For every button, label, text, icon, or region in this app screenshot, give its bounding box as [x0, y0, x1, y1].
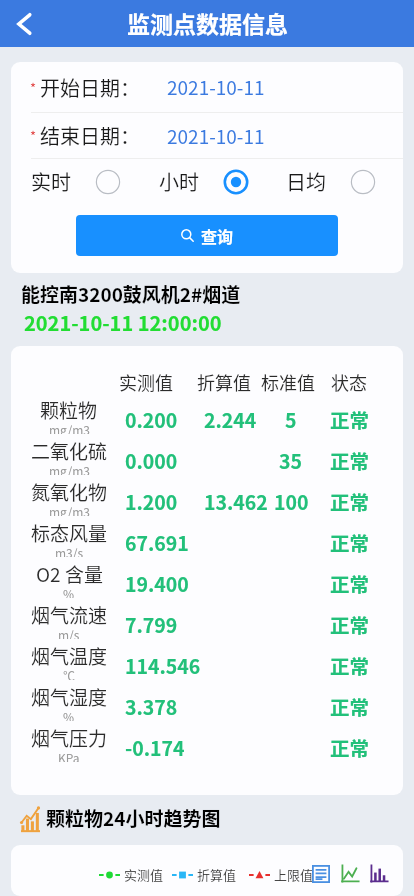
staticText: 正常 [330, 610, 370, 638]
staticText: 烟气压力 [31, 724, 108, 752]
staticText: 正常 [330, 487, 370, 515]
staticText: 正常 [330, 651, 370, 679]
staticText: 13.462 [204, 487, 268, 515]
staticText: 氮氧化物 [31, 478, 108, 506]
staticText: * [30, 126, 37, 145]
staticText: -0.174 [125, 733, 185, 761]
staticText: KPa [58, 749, 80, 762]
button[interactable]: 日均 [276, 167, 403, 196]
button[interactable]: Back [0, 2, 47, 46]
staticText: 折算值 [197, 865, 237, 884]
staticText: % [63, 708, 75, 721]
staticText: * [30, 78, 37, 97]
staticText: 正常 [330, 528, 370, 556]
staticText: 19.400 [125, 569, 189, 597]
staticText: mg/m3 [49, 421, 90, 434]
staticText: 114.546 [125, 651, 201, 679]
staticText: 67.691 [125, 528, 189, 556]
button[interactable]: 实时 [21, 167, 149, 196]
staticText: 烟气温度 [31, 642, 108, 670]
staticText: 二氧化硫 [31, 437, 108, 465]
staticText: 颗粒物 [40, 396, 98, 424]
staticText: 查询 [201, 224, 234, 247]
staticText: 正常 [330, 733, 370, 761]
staticText: 1.200 [125, 487, 178, 515]
staticText: 2021-10-11 12:00:00 [24, 308, 222, 337]
staticText: 实测值 [124, 865, 164, 884]
staticText: 能控南3200鼓风机2#烟道 [21, 280, 241, 308]
button[interactable]: Bar chart [369, 864, 389, 884]
staticText: 0.000 [125, 446, 178, 474]
staticText: 3.378 [125, 692, 178, 720]
staticText: 结束日期： [40, 121, 140, 150]
button[interactable]: Table view [311, 864, 331, 884]
button[interactable]: 查询 [76, 215, 338, 256]
staticText: 监测点数据信息 [127, 6, 288, 39]
staticText: 标态风量 [31, 519, 108, 547]
staticText: mg/m3 [49, 503, 90, 516]
staticText: 状态 [331, 369, 367, 395]
staticText: 实测值 [119, 369, 173, 395]
staticText: 正常 [330, 569, 370, 597]
staticText: mg/m3 [49, 462, 90, 475]
staticText: 7.799 [125, 610, 178, 638]
button[interactable]: * [11, 62, 403, 112]
staticText: % [63, 585, 75, 598]
staticText: 颗粒物24小时趋势图 [46, 804, 221, 832]
staticText: O2 含量 [36, 560, 103, 588]
staticText: 正常 [330, 692, 370, 720]
staticText: 小时 [159, 167, 199, 196]
button[interactable]: Line chart [340, 864, 360, 884]
staticText: m/s [58, 626, 80, 639]
staticText: 0.200 [125, 405, 178, 433]
staticText: 2021-10-11 [167, 73, 265, 101]
staticText: 上限值 [274, 865, 314, 884]
staticText: ℃ [63, 667, 76, 680]
staticText: m3/s [55, 544, 84, 557]
staticText: 烟气流速 [31, 601, 108, 629]
staticText: 正常 [330, 405, 370, 433]
staticText: 折算值 [197, 369, 251, 395]
button[interactable]: 小时 [149, 167, 276, 196]
staticText: 正常 [330, 446, 370, 474]
button[interactable]: * [11, 113, 403, 158]
staticText: 烟气湿度 [31, 683, 108, 711]
staticText: 实时 [31, 167, 71, 196]
staticText: 100 [274, 487, 309, 515]
staticText: 开始日期： [40, 73, 140, 102]
staticText: 标准值 [261, 369, 315, 395]
staticText: 35 [279, 446, 303, 474]
staticText: 5 [285, 405, 297, 433]
staticText: 2021-10-11 [167, 122, 265, 150]
staticText: 2.244 [204, 405, 257, 433]
staticText: 日均 [286, 167, 326, 196]
